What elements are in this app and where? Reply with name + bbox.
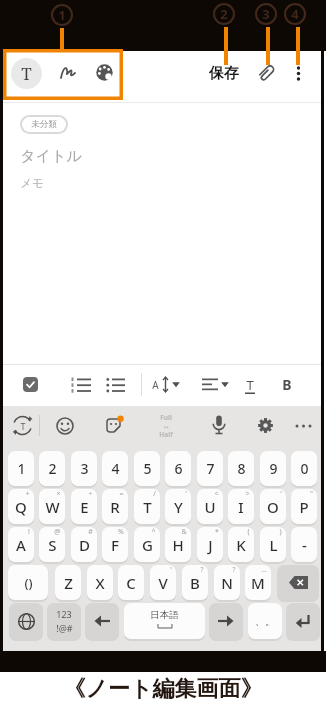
staticText: A [152,378,159,392]
staticText: = [119,489,124,499]
button[interactable]: 1 [8,451,34,486]
staticText: S [48,535,57,555]
button[interactable]: A [150,374,184,395]
button[interactable] [209,603,243,639]
staticText: () [24,574,33,592]
button[interactable]: Y [165,489,191,524]
button[interactable]: 0 [291,451,317,486]
button[interactable]: 8 [228,451,254,486]
button[interactable]: L [260,527,286,562]
button[interactable]: M [245,565,271,600]
button[interactable]: 2 [39,451,65,486]
staticText: Z [64,573,73,593]
button[interactable]: 未分類 [20,115,68,134]
staticText: 3 [80,459,89,478]
staticText: 保存 [209,64,239,82]
button[interactable]: B [182,565,208,600]
button[interactable]: Q [8,489,34,524]
button[interactable]: 6 [165,451,191,486]
staticText: N [221,573,233,593]
button[interactable] [293,421,314,431]
button[interactable]: C [118,565,144,600]
button[interactable] [56,417,74,435]
button[interactable]: H [165,527,191,562]
button[interactable]: Full [152,413,180,439]
button[interactable]: D [71,527,97,562]
button[interactable]: K [228,527,254,562]
staticText: B [190,573,200,593]
staticText: ? [200,565,204,575]
button[interactable] [104,416,124,436]
button[interactable]: 日本語 [124,603,205,639]
staticText: 8 [237,459,246,478]
button[interactable]: B [278,374,296,395]
button[interactable]: G [134,527,160,562]
staticText: 1 [17,459,26,478]
button[interactable]: W [39,489,65,524]
button[interactable] [106,376,126,393]
button[interactable]: T [11,414,34,437]
button[interactable]: 保存 [206,64,242,82]
staticText: 4 [291,5,299,23]
button[interactable] [256,62,277,84]
button[interactable]: E [71,489,97,524]
button[interactable]: X [87,565,113,600]
staticText: L [269,535,278,555]
button[interactable]: Z [55,565,81,600]
staticText: F [111,535,119,555]
staticText: 2 [48,459,57,478]
button[interactable]: 7 [197,451,223,486]
staticText: ! [28,527,30,537]
staticText: タイトル [20,147,82,166]
staticText: % [118,527,124,537]
button[interactable]: O [260,489,286,524]
button[interactable]: - [291,527,317,562]
button[interactable] [200,374,232,395]
button[interactable]: 123 [47,603,81,639]
button[interactable] [71,376,92,393]
staticText: 7 [206,459,215,478]
button[interactable] [290,60,307,87]
button[interactable]: T [134,489,160,524]
button[interactable]: J [197,527,223,562]
staticText: X [95,573,105,593]
button[interactable]: I [228,489,254,524]
button[interactable]: T [11,58,42,89]
button[interactable]: N [214,565,240,600]
staticText: A [16,535,26,555]
button[interactable]: U [197,489,223,524]
button[interactable] [94,62,115,83]
button[interactable]: S [39,527,65,562]
button[interactable] [85,603,119,639]
staticText: ' [170,565,172,575]
staticText: 123 [56,608,72,620]
staticText: O [267,497,279,517]
staticText: V [158,573,168,593]
button[interactable]: P [291,489,317,524]
button[interactable]: R [102,489,128,524]
button[interactable] [9,603,43,639]
staticText: ' [280,489,282,499]
button[interactable]: 、。 [248,603,282,639]
button[interactable] [23,377,38,392]
staticText: & [181,527,187,537]
staticText: G [142,535,153,555]
button[interactable] [286,603,320,639]
staticText: Y [174,497,183,517]
staticText: !@# [56,622,73,634]
button[interactable]: 9 [260,451,286,486]
button[interactable] [277,565,319,600]
button[interactable]: A [8,527,34,562]
button[interactable]: V [150,565,176,600]
staticText: K [236,535,246,555]
button[interactable]: 5 [134,451,160,486]
button[interactable] [256,416,275,435]
button[interactable]: 4 [102,451,128,486]
button[interactable]: F [102,527,128,562]
button[interactable]: 3 [71,451,97,486]
staticText: * [215,527,219,537]
button[interactable] [210,414,228,437]
button[interactable]: T [241,374,259,395]
button[interactable] [59,62,79,82]
button[interactable]: () [8,565,48,600]
